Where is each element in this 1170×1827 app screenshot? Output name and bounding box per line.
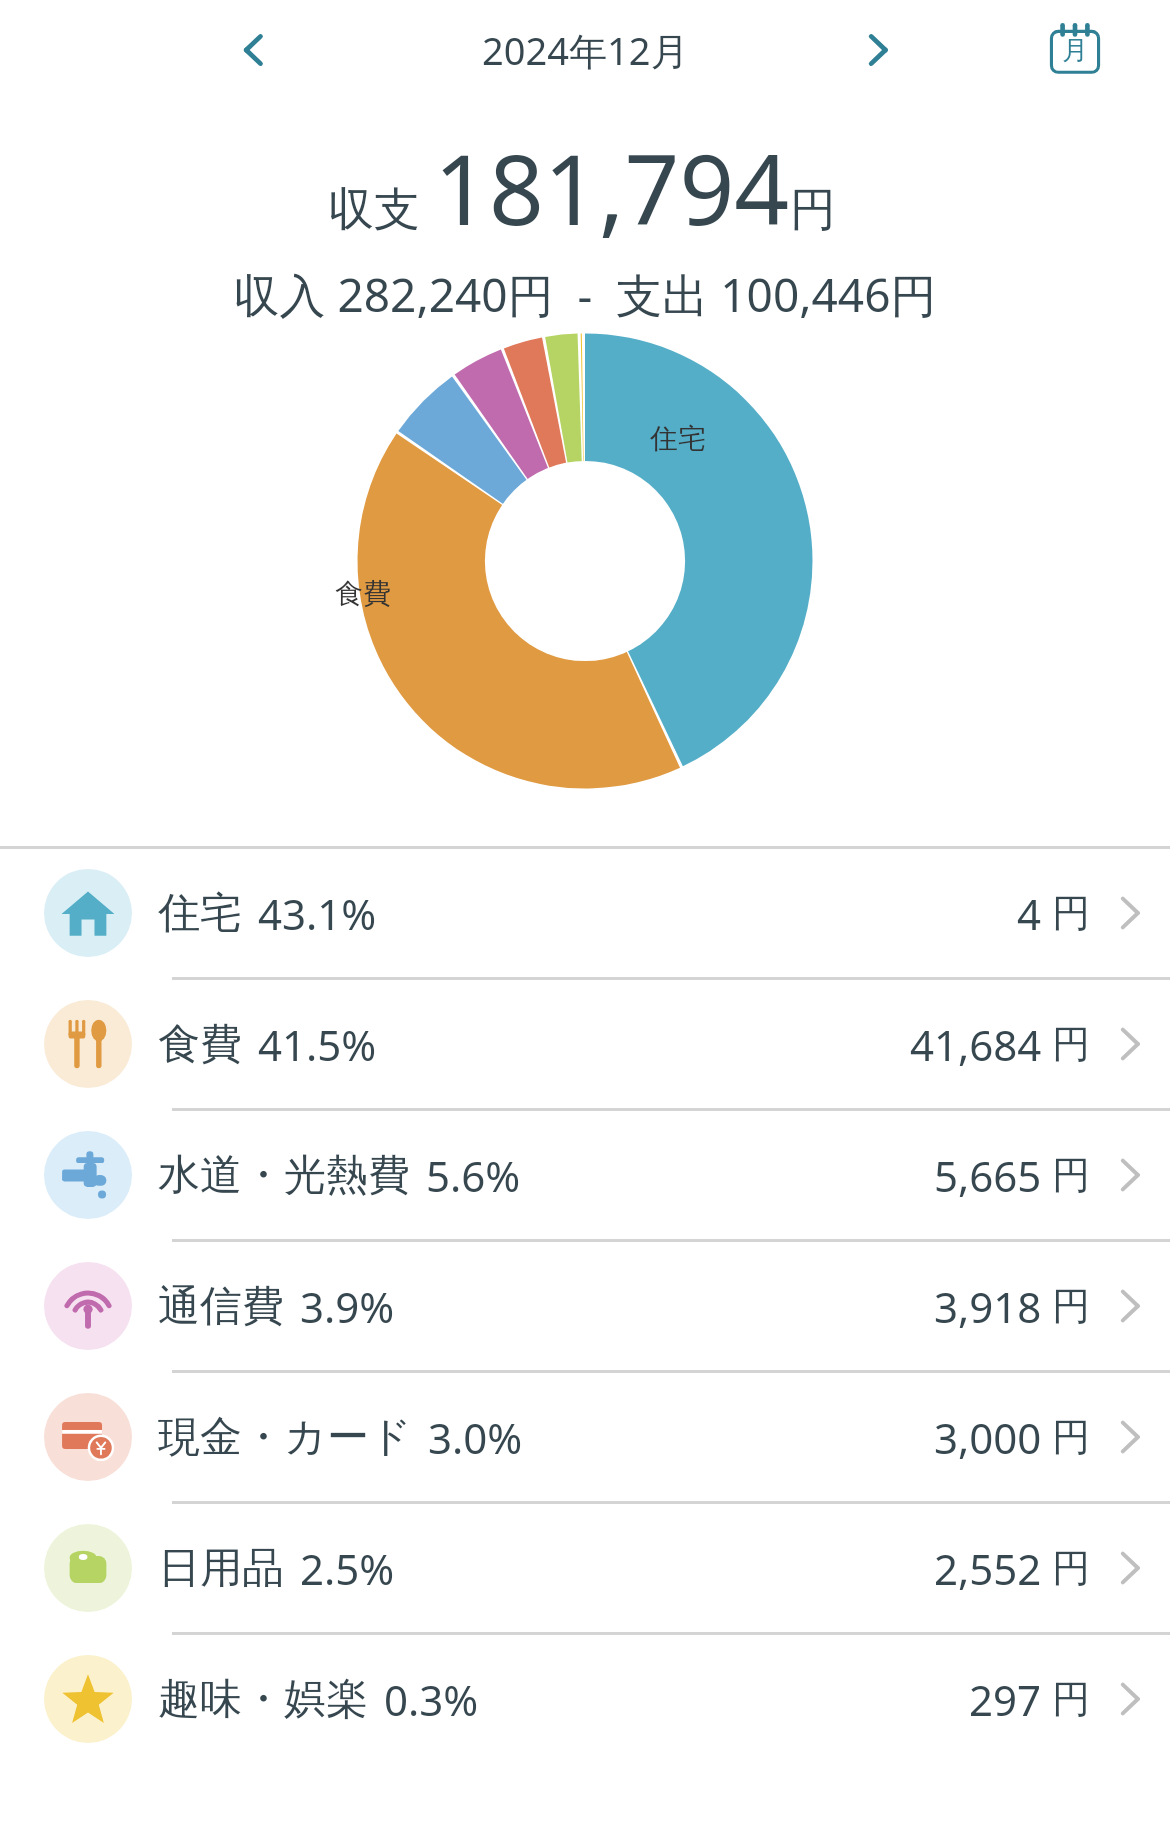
staticText: 2,552: [934, 1540, 1042, 1597]
button[interactable]: Monthly view: [1035, 10, 1115, 90]
staticText: 4: [1017, 885, 1042, 942]
staticText: 日用品: [158, 1542, 284, 1595]
staticText: 3.0%: [428, 1409, 523, 1466]
staticText: 円: [1052, 1544, 1090, 1592]
staticText: 円: [1052, 1151, 1090, 1199]
staticText: 住宅: [158, 887, 242, 940]
staticText: 食費: [158, 1018, 242, 1071]
button[interactable]: 食費: [0, 980, 1170, 1108]
button[interactable]: Previous month: [215, 12, 291, 88]
button[interactable]: 住宅: [0, 849, 1170, 977]
staticText: 住宅: [650, 421, 706, 456]
staticText: 181,794: [434, 122, 790, 253]
staticText: 収入 282,240円 - 支出 100,446円: [0, 263, 1170, 326]
staticText: 297: [969, 1671, 1042, 1728]
staticText: 5.6%: [426, 1147, 521, 1204]
staticText: 41,684: [910, 1016, 1042, 1073]
button[interactable]: 日用品: [0, 1504, 1170, 1632]
staticText: 円: [1052, 1020, 1090, 1068]
staticText: 趣味・娯楽: [158, 1673, 368, 1726]
staticText: 0.3%: [384, 1671, 479, 1728]
staticText: 円: [1052, 889, 1090, 937]
staticText: 月: [1062, 34, 1088, 67]
button[interactable]: 現金・カード: [0, 1373, 1170, 1501]
staticText: 水道・光熱費: [158, 1149, 410, 1202]
staticText: 円: [790, 181, 836, 239]
staticText: 43.1%: [258, 885, 377, 942]
staticText: 3,918: [934, 1278, 1042, 1335]
staticText: 通信費: [158, 1280, 284, 1333]
staticText: 3.9%: [300, 1278, 395, 1335]
staticText: 2.5%: [300, 1540, 395, 1597]
staticText: 2024年12月: [482, 24, 689, 76]
button[interactable]: 通信費: [0, 1242, 1170, 1370]
button[interactable]: 趣味・娯楽: [0, 1635, 1170, 1763]
staticText: 現金・カード: [158, 1411, 412, 1464]
staticText: 41.5%: [258, 1016, 377, 1073]
button[interactable]: 水道・光熱費: [0, 1111, 1170, 1239]
staticText: 3,000: [934, 1409, 1042, 1466]
button[interactable]: Next month: [840, 12, 916, 88]
staticText: 収支: [328, 181, 420, 239]
staticText: 5,665: [934, 1147, 1042, 1204]
staticText: 円: [1052, 1413, 1090, 1461]
staticText: 円: [1052, 1675, 1090, 1723]
staticText: 円: [1052, 1282, 1090, 1330]
staticText: 食費: [335, 576, 391, 611]
